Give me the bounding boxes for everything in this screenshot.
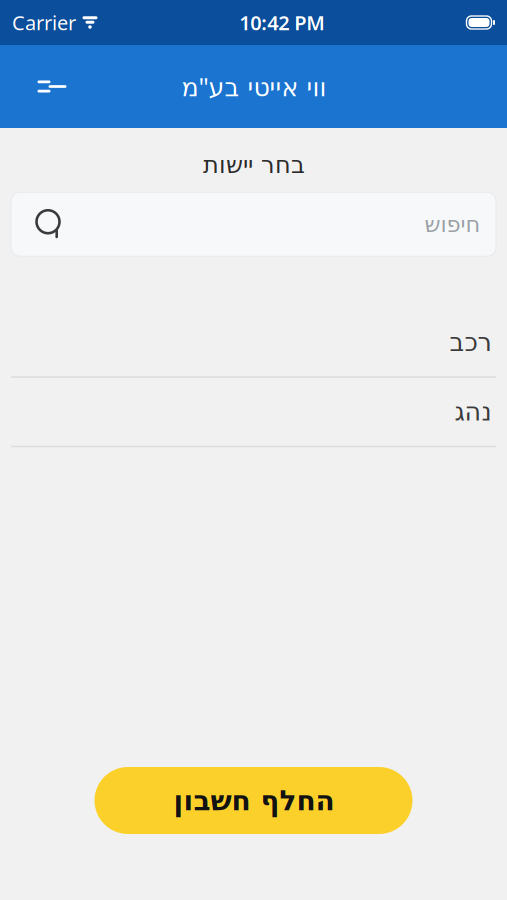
staticText: 10:42 PM bbox=[239, 9, 325, 36]
staticText: בחר יישות bbox=[202, 151, 304, 178]
button[interactable]: Back bbox=[21, 58, 77, 114]
staticText: Carrier bbox=[12, 9, 76, 36]
button[interactable]: נהג bbox=[0, 378, 507, 446]
staticText: ווי אייטי בע"מ bbox=[181, 70, 326, 103]
staticText: רכב bbox=[449, 328, 491, 357]
button[interactable]: החלף חשבון bbox=[94, 767, 412, 834]
staticText: נהג bbox=[454, 397, 491, 426]
staticText: חיפוש bbox=[424, 211, 480, 237]
staticText: החלף חשבון bbox=[173, 785, 334, 816]
button[interactable]: רכב bbox=[0, 308, 507, 376]
